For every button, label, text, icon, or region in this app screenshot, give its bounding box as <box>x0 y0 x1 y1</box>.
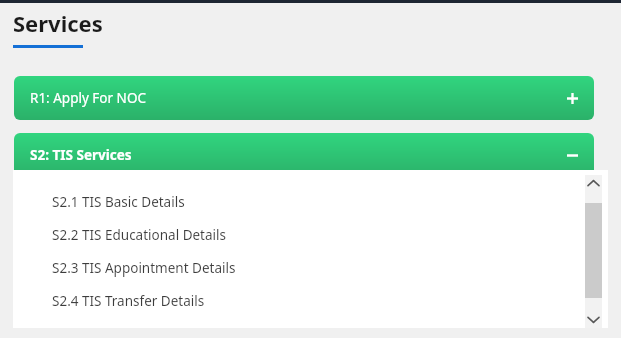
button[interactable]: S2.1 TIS Basic Details <box>13 185 608 218</box>
staticText: S2.1 TIS Basic Details <box>52 193 185 211</box>
button[interactable]: R1: Apply For NOC <box>14 76 594 120</box>
staticText: Services <box>13 8 103 38</box>
button[interactable]: S2.2 TIS Educational Details <box>13 218 608 251</box>
button[interactable]: S2.4 TIS Transfer Details <box>13 284 608 317</box>
button[interactable]: Scroll up <box>585 175 602 192</box>
staticText: S2.4 TIS Transfer Details <box>52 292 205 310</box>
other: Collapse <box>564 147 580 163</box>
other: Expand <box>564 90 580 106</box>
staticText: S2.3 TIS Appointment Details <box>52 259 236 277</box>
button[interactable]: S2.3 TIS Appointment Details <box>13 251 608 284</box>
staticText: R1: Apply For NOC <box>30 89 146 107</box>
button[interactable]: S2: TIS Services <box>14 133 594 177</box>
staticText: S2.2 TIS Educational Details <box>52 226 226 244</box>
staticText: S2: TIS Services <box>30 146 132 164</box>
button[interactable]: Scroll down <box>585 311 602 328</box>
